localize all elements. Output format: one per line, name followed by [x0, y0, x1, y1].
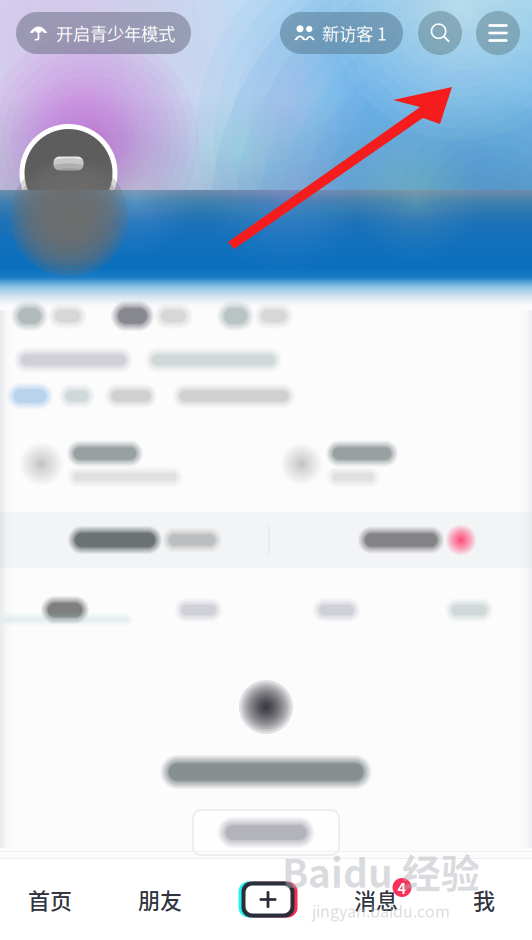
button[interactable]: 我: [431, 859, 532, 940]
button[interactable]: 首页: [0, 859, 103, 940]
button[interactable]: 朋友: [107, 859, 213, 940]
button[interactable]: 发布: [215, 859, 321, 940]
staticText: 朋友: [138, 884, 182, 915]
button[interactable]: 菜单: [476, 11, 520, 55]
staticText: 4: [397, 877, 406, 898]
staticText: jingyan.baidu.com: [312, 899, 450, 922]
button[interactable]: 开启青少年模式: [16, 12, 191, 54]
staticText: 新访客 1: [322, 20, 387, 46]
button[interactable]: 新访客 1: [280, 12, 403, 54]
staticText: 开启青少年模式: [56, 20, 175, 46]
button[interactable]: 消息: [316, 859, 436, 940]
staticText: Baidu 经验: [282, 843, 480, 899]
staticText: 消息: [354, 884, 398, 915]
button[interactable]: 搜索: [418, 11, 462, 55]
staticText: 我: [473, 884, 495, 915]
staticText: 首页: [28, 884, 72, 915]
